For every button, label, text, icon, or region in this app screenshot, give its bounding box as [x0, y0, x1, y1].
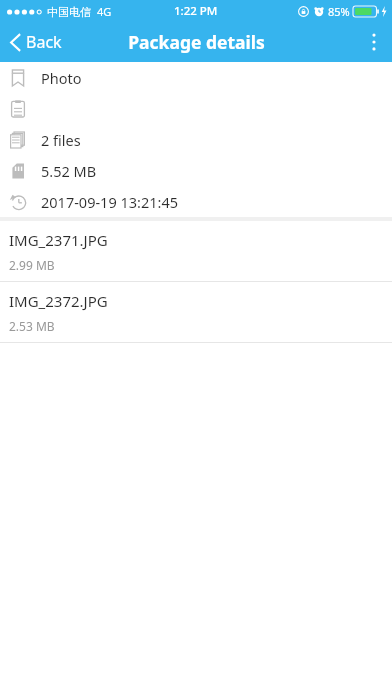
staticText: 中国电信 [47, 5, 91, 19]
button[interactable]: Back [0, 22, 74, 62]
button[interactable]: IMG_2372.JPG [0, 282, 392, 342]
staticText: 2.53 MB [9, 318, 55, 334]
staticText: 85% [328, 4, 350, 19]
staticText: IMG_2371.JPG [9, 230, 108, 250]
staticText: Back [26, 31, 62, 53]
button[interactable]: 5.52 MB [0, 155, 392, 186]
button[interactable]: More options [356, 22, 392, 62]
staticText: Package details [128, 30, 265, 54]
button[interactable]: 2017-09-19 13:21:45 [0, 186, 392, 217]
button[interactable]: 2 files [0, 124, 392, 155]
button[interactable]: IMG_2371.JPG [0, 221, 392, 281]
staticText: 4G [97, 4, 112, 19]
staticText: IMG_2372.JPG [9, 291, 108, 311]
staticText: 1:22 PM [174, 3, 218, 19]
staticText: Photo [41, 68, 82, 88]
button[interactable] [0, 93, 392, 124]
staticText: 2.99 MB [9, 257, 55, 273]
staticText: 5.52 MB [41, 161, 97, 181]
button[interactable]: Photo [0, 62, 392, 93]
staticText: 2 files [41, 130, 81, 150]
staticText: 2017-09-19 13:21:45 [41, 192, 178, 212]
